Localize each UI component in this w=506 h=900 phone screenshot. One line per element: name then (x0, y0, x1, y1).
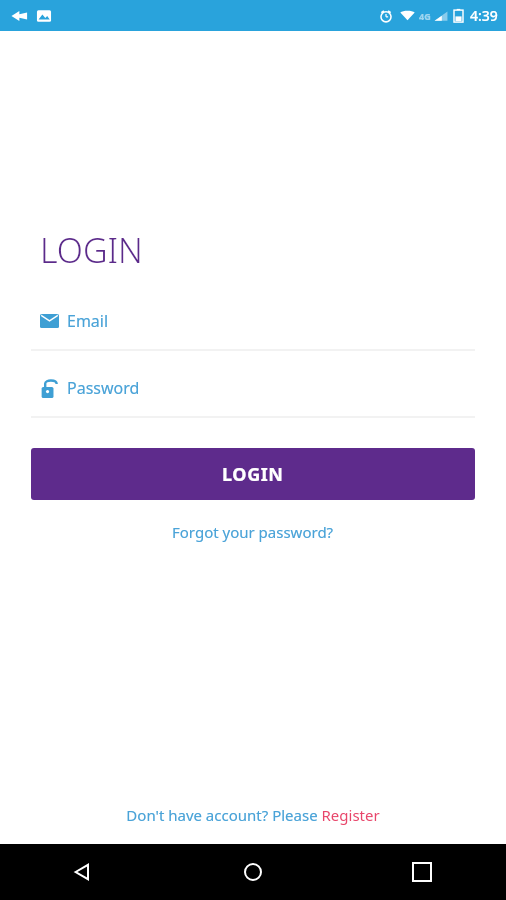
staticText: Forgot your password? (172, 522, 334, 542)
button[interactable]: Home (168, 844, 337, 900)
button[interactable]: Email (31, 301, 475, 351)
staticText: Don't have account? Please Register (126, 805, 380, 825)
button[interactable]: Password (31, 368, 475, 418)
staticText: 4G (419, 10, 431, 22)
staticText: 4:39 (470, 6, 498, 25)
staticText: Password (67, 377, 140, 399)
button[interactable]: Recent apps (337, 844, 506, 900)
staticText: LOGIN (40, 227, 143, 273)
other: Email (40, 314, 59, 328)
button[interactable]: LOGIN (31, 448, 475, 500)
staticText: Email (67, 310, 109, 332)
other: Password (41, 379, 57, 398)
button[interactable]: Back (0, 844, 168, 900)
button[interactable]: Don't have account? Please Register (114, 800, 392, 830)
staticText: LOGIN (222, 462, 284, 487)
button[interactable]: Forgot your password? (162, 518, 344, 546)
